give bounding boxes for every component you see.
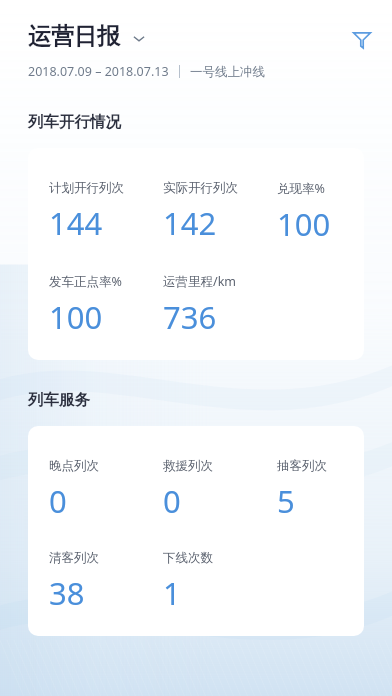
staticText: 142 (163, 202, 217, 244)
staticText: 0 (163, 480, 181, 522)
button[interactable]: 运营日报 (28, 22, 147, 51)
staticText: 0 (49, 480, 67, 522)
staticText: 一号线上冲线 (190, 64, 265, 80)
staticText: 736 (163, 296, 217, 338)
staticText: 38 (49, 572, 85, 614)
staticText: 兑现率% (277, 180, 325, 197)
staticText: 清客列次 (49, 550, 99, 566)
staticText: 100 (49, 296, 103, 338)
staticText: 下线次数 (163, 550, 213, 566)
staticText: 列车开行情况 (28, 112, 121, 132)
staticText: 5 (277, 480, 295, 522)
staticText: 计划开行列次 (49, 180, 124, 196)
staticText: 实际开行列次 (163, 180, 238, 196)
button[interactable]: 计划开行列次 (28, 148, 364, 360)
button[interactable]: Filter (348, 26, 376, 54)
staticText: 2018.07.09 – 2018.07.13 (28, 63, 169, 80)
button[interactable]: 晚点列次 (28, 426, 364, 636)
staticText: 列车服务 (28, 390, 90, 410)
staticText: 运营日报 (28, 22, 120, 51)
staticText: 100 (277, 203, 331, 245)
staticText: 抽客列次 (277, 458, 327, 474)
staticText: 运营里程/km (163, 273, 237, 290)
staticText: 救援列次 (163, 458, 213, 474)
staticText: 晚点列次 (49, 458, 99, 474)
staticText: 发车正点率% (49, 273, 122, 290)
staticText: 1 (163, 572, 181, 614)
staticText: 144 (49, 202, 103, 244)
